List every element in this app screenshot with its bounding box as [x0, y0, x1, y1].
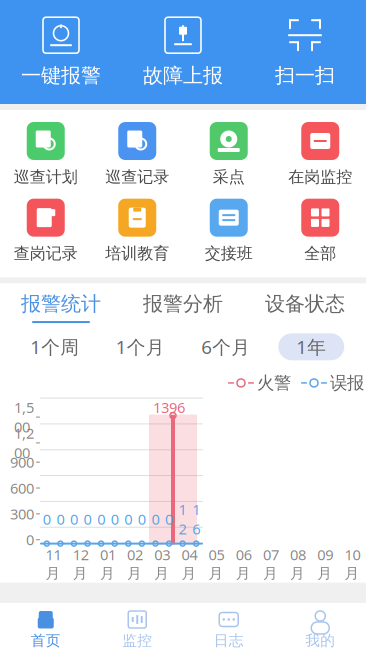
staticText: 采点	[213, 167, 245, 187]
button[interactable]: 采点	[183, 122, 274, 187]
staticText: 16	[192, 500, 200, 539]
button[interactable]: 1个周	[12, 333, 97, 360]
staticText: 培训教育	[105, 244, 169, 263]
staticText: 日志	[214, 631, 244, 649]
staticText: 巡查记录	[105, 167, 169, 187]
staticText: 0	[43, 509, 51, 529]
staticText: 0	[124, 509, 132, 529]
button[interactable]: 巡查计划	[0, 122, 91, 187]
staticText: 0	[26, 530, 34, 549]
button[interactable]: 故障上报	[122, 0, 244, 104]
button[interactable]: 全部	[274, 199, 366, 263]
staticText: 0	[165, 509, 173, 529]
staticText: 1,500	[14, 398, 34, 437]
staticText: 1年	[296, 334, 326, 359]
button[interactable]: 设备状态	[244, 285, 366, 329]
staticText: 12月	[73, 545, 89, 582]
staticText: 900	[10, 452, 34, 472]
staticText: 全部	[304, 244, 336, 263]
staticText: 首页	[31, 631, 61, 649]
staticText: 0	[97, 509, 105, 529]
staticText: 12	[179, 500, 187, 539]
button[interactable]: 查岗记录	[0, 199, 91, 263]
staticText: 0	[138, 509, 146, 529]
staticText: 1个月	[116, 334, 165, 359]
button[interactable]: 扫一扫	[244, 0, 366, 104]
button[interactable]: 在岗监控	[274, 122, 366, 187]
button[interactable]: 首页	[0, 603, 91, 655]
staticText: 01月	[100, 545, 116, 582]
staticText: 在岗监控	[288, 167, 352, 187]
staticText: 0	[70, 509, 78, 529]
staticText: 11月	[46, 545, 62, 582]
staticText: 300	[10, 504, 34, 524]
staticText: 查岗记录	[14, 244, 78, 263]
button[interactable]: 报警分析	[122, 285, 244, 329]
staticText: 09月	[317, 545, 333, 582]
staticText: 0	[83, 509, 91, 529]
button[interactable]: 我的	[274, 603, 366, 655]
staticText: 故障上报	[143, 63, 223, 88]
staticText: 监控	[122, 631, 152, 649]
staticText: 1,200	[14, 423, 34, 462]
staticText: 08月	[290, 545, 306, 582]
staticText: 03月	[154, 545, 170, 582]
staticText: 1396	[153, 398, 185, 417]
staticText: 10月	[344, 545, 360, 582]
button[interactable]: 巡查记录	[91, 122, 183, 187]
staticText: 我的	[305, 631, 335, 649]
staticText: 0	[151, 509, 159, 529]
staticText: 设备状态	[265, 291, 345, 316]
button[interactable]: 监控	[91, 603, 183, 655]
button[interactable]: 1年	[268, 333, 354, 360]
staticText: 07月	[263, 545, 279, 582]
staticText: 火警	[257, 372, 291, 394]
staticText: 02月	[127, 545, 143, 582]
staticText: 1个周	[30, 334, 79, 359]
staticText: 报警统计	[21, 291, 101, 316]
staticText: 报警分析	[143, 291, 223, 316]
staticText: 一键报警	[21, 63, 101, 88]
button[interactable]: 培训教育	[91, 199, 183, 263]
staticText: 600	[10, 478, 34, 498]
staticText: 误报	[330, 372, 364, 394]
staticText: 扫一扫	[275, 63, 335, 88]
staticText: 05月	[209, 545, 225, 582]
staticText: 0	[111, 509, 119, 529]
button[interactable]: 一键报警	[0, 0, 122, 104]
staticText: 04月	[181, 545, 197, 582]
staticText: 交接班	[205, 244, 253, 263]
button[interactable]: 1个月	[97, 333, 183, 360]
button[interactable]: 6个月	[183, 333, 268, 360]
staticText: 0	[56, 509, 64, 529]
staticText: 06月	[236, 545, 252, 582]
button[interactable]: 报警统计	[0, 285, 122, 329]
button[interactable]: 交接班	[183, 199, 274, 263]
button[interactable]: 日志	[183, 603, 274, 655]
staticText: 巡查计划	[14, 167, 78, 187]
staticText: 6个月	[201, 334, 250, 359]
